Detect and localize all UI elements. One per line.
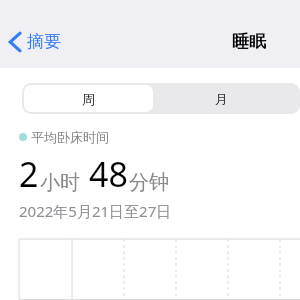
staticText: 平均卧床时间 (31, 129, 109, 145)
staticText: 睡眠 (232, 31, 266, 52)
staticText: 月 (215, 91, 228, 107)
button[interactable]: 月 (155, 83, 288, 114)
staticText: 周 (82, 91, 95, 107)
staticText: 摘要 (27, 31, 61, 52)
staticText: 2 (19, 151, 39, 197)
staticText: 48 (89, 151, 128, 197)
staticText: 分钟 (129, 170, 169, 195)
button[interactable]: 周 (24, 85, 153, 112)
button[interactable]: 摘要 (0, 27, 71, 56)
staticText: 2022年5月21日至27日 (19, 201, 172, 221)
staticText: 小时 (40, 170, 80, 195)
